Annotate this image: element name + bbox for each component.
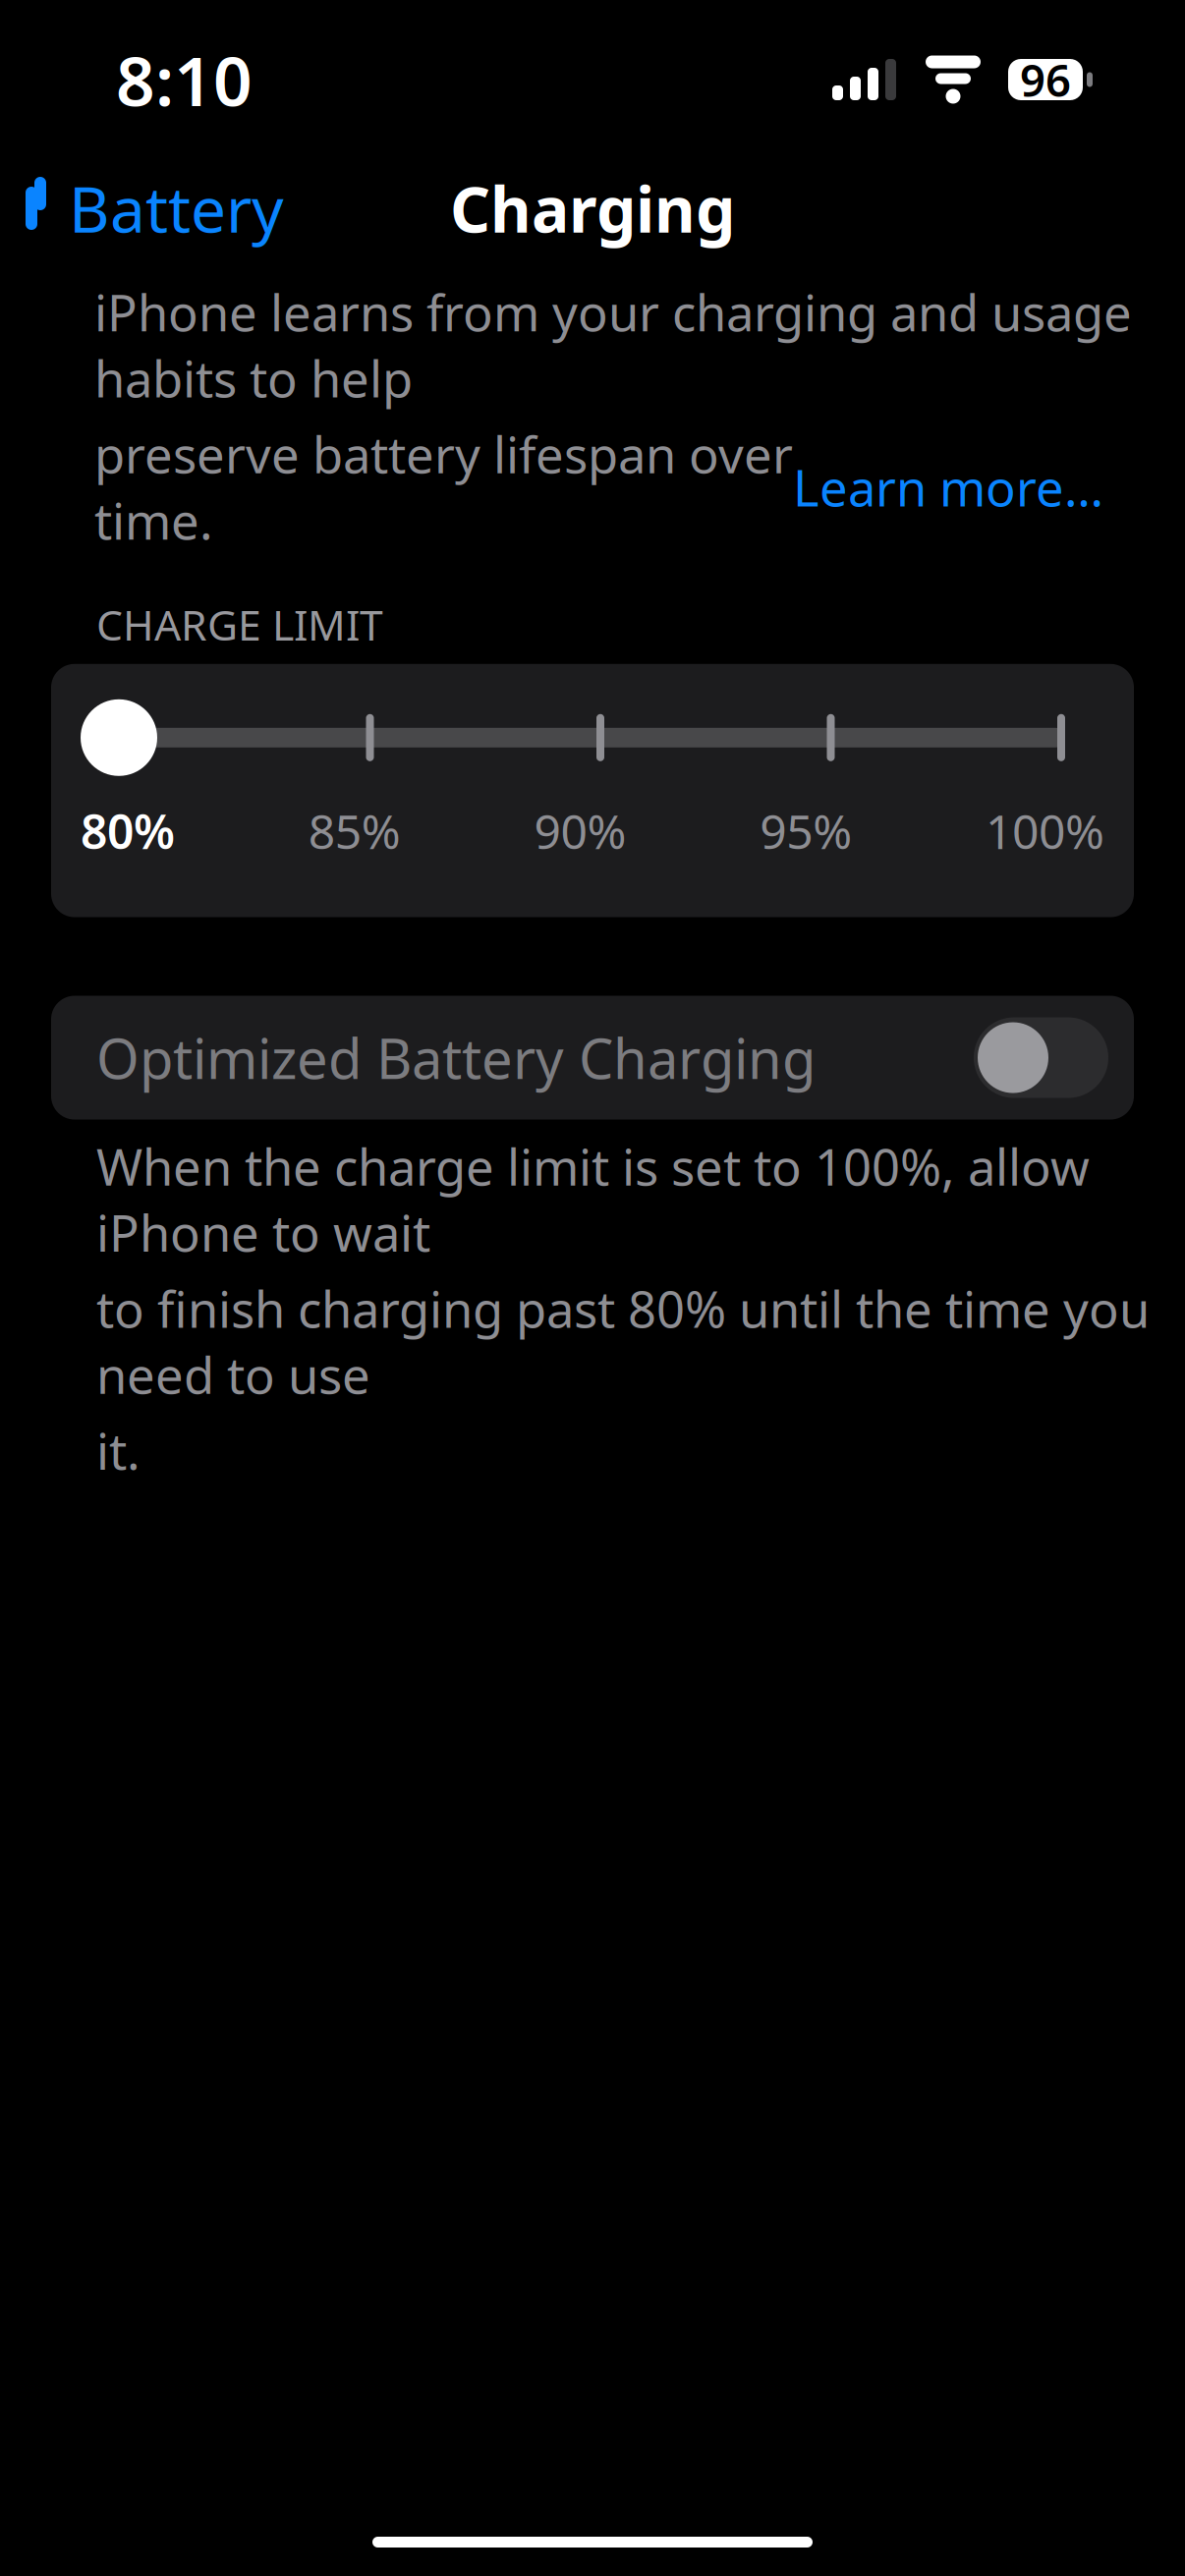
staticText: to finish charging past 80% until the ti…	[96, 1275, 1150, 1408]
button[interactable]: Optimized Battery Charging	[51, 996, 1134, 1120]
staticText: 85%	[308, 800, 401, 862]
staticText: 96	[1020, 50, 1071, 109]
staticText: CHARGE LIMIT	[96, 596, 383, 652]
staticText: 80%	[81, 800, 175, 862]
staticText: preserve battery lifespan over time.	[94, 421, 793, 553]
staticText: Learn more…	[793, 454, 1103, 520]
button[interactable]: Battery	[0, 151, 284, 266]
staticText: When the charge limit is set to 100%, al…	[96, 1133, 1090, 1266]
staticText: iPhone learns from your charging and usa…	[94, 279, 1132, 411]
staticText: 8:10	[116, 34, 253, 125]
staticText: 90%	[534, 800, 626, 862]
staticText: it.	[96, 1417, 141, 1484]
staticText: Optimized Battery Charging	[96, 1021, 816, 1094]
staticText: 100%	[986, 800, 1104, 862]
staticText: Battery	[69, 167, 284, 250]
button[interactable]: Learn more…	[793, 454, 1103, 520]
staticText: Charging	[450, 167, 735, 250]
staticText: 95%	[760, 800, 852, 862]
